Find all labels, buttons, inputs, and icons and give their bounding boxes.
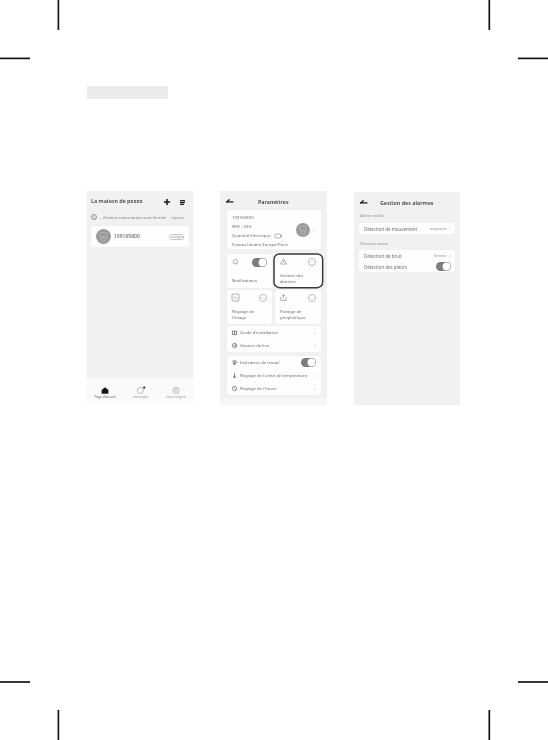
- button[interactable]: Partage de périphérique: [275, 290, 321, 324]
- staticText: Quantité électrique :: [232, 233, 273, 239]
- staticText: 109165800: [114, 233, 140, 240]
- staticText: mon compte: [166, 395, 186, 399]
- button[interactable]: Détection de mouvement: [359, 223, 455, 234]
- staticText: Fuseau horaire Europe/Paris: [232, 242, 288, 248]
- staticText: Réglage de l'unité de température: [240, 373, 307, 379]
- staticText: moyenne: [430, 226, 447, 231]
- staticText: Notifications: [232, 278, 257, 284]
- staticText: Indicateur de travail: [240, 360, 280, 366]
- button[interactable]: 109165800: [91, 226, 189, 247]
- button[interactable]: messages: [123, 379, 158, 403]
- staticText: Gestion des alarmes: [380, 199, 434, 206]
- staticText: Réglage de l'heure: [240, 386, 277, 392]
- staticText: La maison de pxxxx: [91, 197, 143, 204]
- staticText: Détection de bruit: [364, 253, 402, 259]
- button[interactable]: Réglage de l'image: [227, 290, 272, 324]
- button[interactable]: mon compte: [158, 379, 193, 403]
- button[interactable]: Page d'accueil: [87, 379, 123, 403]
- button[interactable]: Réglage de l'unité de température: [232, 369, 316, 382]
- staticText: WiFi : 92%: [232, 224, 252, 230]
- staticText: en ligne: [171, 235, 183, 239]
- button[interactable]: Guide d'installation: [232, 326, 316, 339]
- staticText: Alarme mobile: [360, 213, 385, 218]
- staticText: ...ification importantes sont fermée: [100, 215, 167, 220]
- button[interactable]: Menu: [176, 196, 188, 208]
- staticText: réparer: [171, 215, 186, 220]
- staticText: Gestion de lieu: [240, 343, 270, 349]
- staticText: Paramètres: [258, 198, 289, 205]
- staticText: Détection de mouvement: [364, 226, 418, 232]
- button[interactable]: Notifications: [227, 254, 272, 288]
- button[interactable]: Retour: [224, 195, 235, 206]
- staticText: Page d'accueil: [94, 395, 116, 399]
- button[interactable]: Détection des pleurs: [364, 261, 451, 272]
- button[interactable]: Gestion des alarmes: [275, 254, 321, 288]
- staticText: Réglage de l'image: [232, 309, 254, 320]
- staticText: Guide d'installation: [240, 330, 279, 336]
- staticText: Partage de périphérique: [280, 309, 306, 320]
- staticText: Détection sonore: [360, 241, 389, 246]
- staticText: 109165800: [232, 215, 254, 221]
- button[interactable]: Ajouter: [161, 196, 173, 208]
- staticText: Gestion des alarmes: [280, 273, 304, 284]
- button[interactable]: Réglage de l'heure: [232, 382, 316, 395]
- button[interactable]: Gestion de lieu: [232, 339, 316, 352]
- button[interactable]: 109165800: [227, 210, 321, 249]
- button[interactable]: ...ification importantes sont fermée: [91, 211, 186, 223]
- staticText: Détection des pleurs: [364, 264, 407, 270]
- button[interactable]: Retour: [358, 196, 369, 207]
- staticText: fermer: [434, 253, 447, 258]
- button[interactable]: Indicateur de travail: [232, 356, 316, 369]
- button[interactable]: Détection de bruit: [364, 250, 451, 261]
- staticText: messages: [133, 395, 148, 399]
